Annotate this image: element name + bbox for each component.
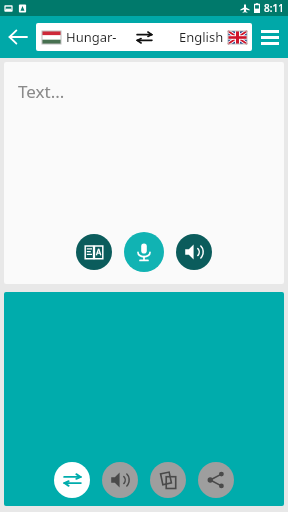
staticText: Text... (18, 80, 65, 103)
button[interactable]: Listen (102, 462, 138, 498)
button[interactable]: Listen (176, 234, 212, 270)
button[interactable]: Hungar- (36, 23, 129, 51)
staticText: 8:11 (264, 1, 284, 15)
button[interactable]: Swap languages (129, 23, 159, 51)
button[interactable]: Voice input (124, 232, 164, 272)
button[interactable]: Dictionary (76, 234, 112, 270)
button[interactable]: Swap translation (54, 462, 90, 498)
button[interactable]: Back (0, 19, 36, 55)
staticText: English (179, 28, 224, 46)
button[interactable]: Menu (252, 19, 288, 55)
staticText: Hungar- (66, 28, 117, 46)
button[interactable]: Share (198, 462, 234, 498)
button[interactable]: Copy (150, 462, 186, 498)
button[interactable]: English (159, 23, 252, 51)
